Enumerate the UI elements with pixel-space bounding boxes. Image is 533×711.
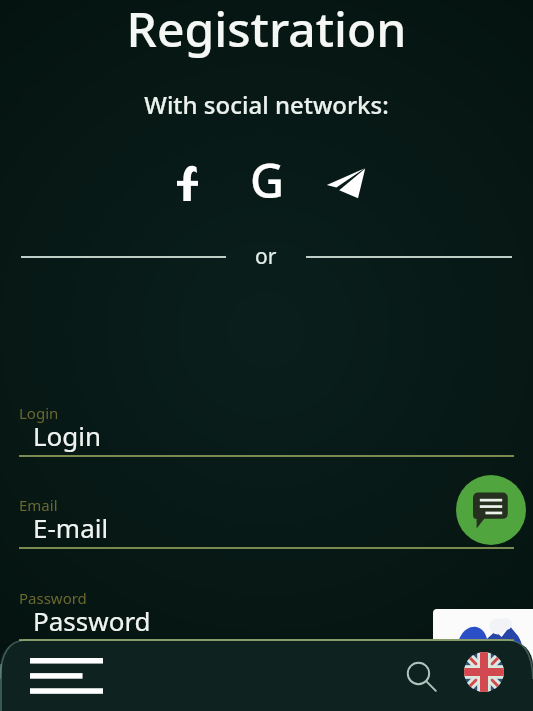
button[interactable]: Promo card (433, 609, 533, 671)
button[interactable]: Chat (456, 475, 526, 545)
staticText: Registration (0, 0, 533, 61)
button[interactable]: Search (398, 653, 446, 701)
button[interactable]: Language (462, 650, 506, 694)
button[interactable]: Sign in with Facebook (164, 160, 210, 206)
button[interactable]: Sign in with Telegram (323, 160, 369, 206)
button[interactable]: Sign in with Google (244, 148, 290, 210)
staticText: Password (33, 603, 151, 638)
button[interactable]: Menu (11, 640, 121, 711)
staticText: Password (19, 588, 87, 608)
staticText: Login (33, 418, 102, 453)
staticText: E-mail (33, 510, 109, 545)
staticText: or (255, 242, 277, 271)
staticText: With social networks: (0, 88, 533, 121)
staticText: Email (19, 495, 58, 515)
staticText: Login (19, 403, 59, 423)
staticText: G (250, 148, 285, 210)
